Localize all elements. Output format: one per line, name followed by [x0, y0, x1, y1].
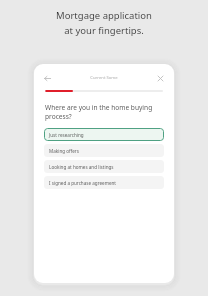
staticText: Looking at homes and listings [49, 164, 114, 170]
staticText: Where are you in the home buying process… [45, 103, 163, 121]
button[interactable]: I signed a purchase agreement [44, 176, 164, 189]
staticText: Current Some [90, 75, 118, 81]
staticText: at your fingertips. [64, 24, 144, 37]
staticText: I signed a purchase agreement [49, 180, 117, 186]
button[interactable]: Close [155, 73, 166, 84]
staticText: Just researching [49, 132, 84, 138]
staticText: Mortgage application [56, 9, 152, 22]
button[interactable]: Looking at homes and listings [44, 160, 164, 173]
staticText: Making offers [49, 148, 79, 154]
button[interactable]: Just researching [44, 128, 164, 141]
button[interactable]: Back [42, 73, 53, 84]
button[interactable]: Making offers [44, 144, 164, 157]
